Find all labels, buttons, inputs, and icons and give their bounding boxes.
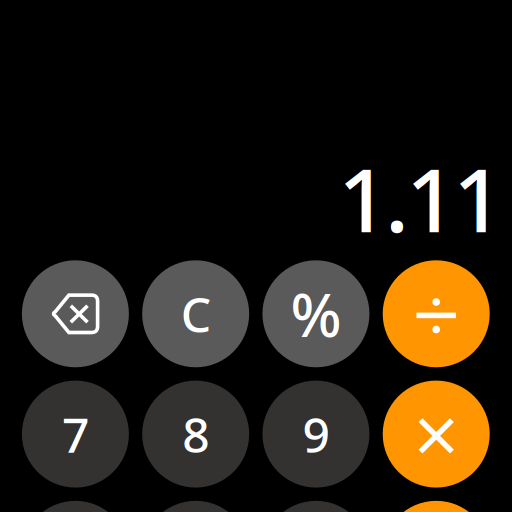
button[interactable]: 9 (262, 381, 369, 488)
button[interactable]: Multiply (383, 381, 490, 488)
button[interactable]: 5 (142, 501, 249, 512)
button[interactable]: 8 (142, 381, 249, 488)
button[interactable]: % (262, 260, 369, 367)
button[interactable]: C (142, 260, 249, 367)
staticText: % (290, 274, 341, 354)
staticText: 7 (62, 402, 89, 466)
staticText: C (181, 282, 211, 346)
button[interactable]: 6 (262, 501, 369, 512)
staticText: 9 (302, 402, 329, 466)
staticText: 8 (182, 402, 209, 466)
button[interactable]: Subtract (383, 501, 490, 512)
button[interactable]: Divide (383, 260, 490, 367)
button[interactable]: Delete (22, 260, 129, 367)
button[interactable]: 4 (22, 501, 129, 512)
staticText: 1.11 (338, 140, 503, 256)
button[interactable]: 7 (22, 381, 129, 488)
